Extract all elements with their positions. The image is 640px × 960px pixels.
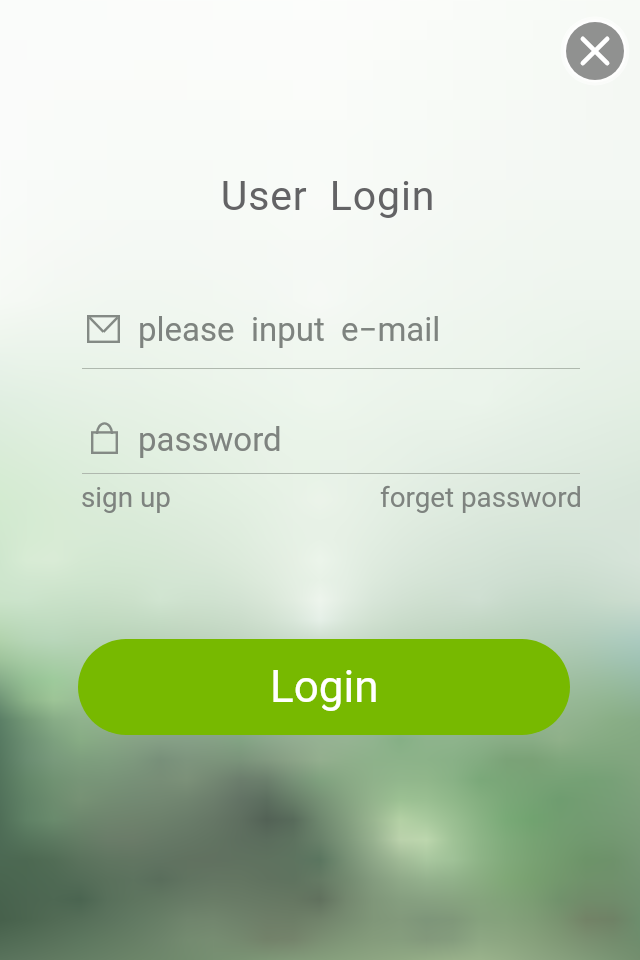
button[interactable]: Close (566, 22, 624, 80)
button[interactable]: Login (78, 639, 570, 735)
button[interactable]: sign up (81, 481, 171, 514)
staticText: Login (270, 661, 379, 713)
button[interactable]: please input e−mail (138, 310, 441, 349)
button[interactable]: forget password (380, 481, 583, 514)
button[interactable]: password (138, 420, 282, 459)
staticText: User Login (8, 172, 640, 220)
